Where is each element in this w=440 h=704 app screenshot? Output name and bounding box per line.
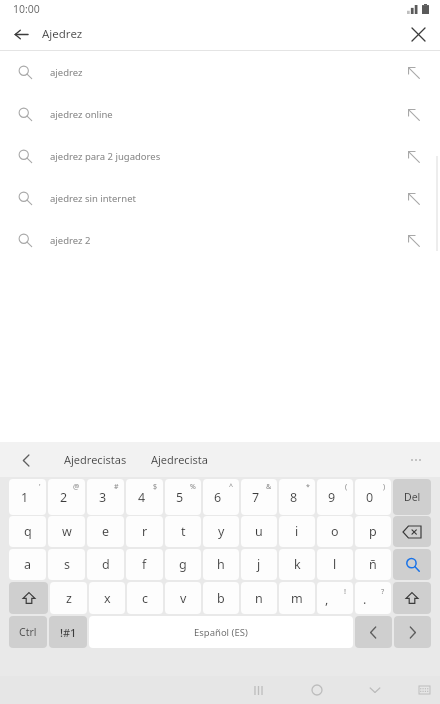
button[interactable]: f: [126, 549, 163, 580]
button[interactable]: l: [317, 549, 353, 580]
button[interactable]: ,: [317, 582, 353, 614]
staticText: 2: [60, 489, 68, 506]
button[interactable]: g: [165, 549, 201, 580]
button[interactable]: e: [87, 516, 124, 547]
button[interactable]: Back: [8, 21, 34, 47]
staticText: p: [369, 523, 377, 540]
button[interactable]: z: [50, 582, 87, 614]
button[interactable]: v: [165, 582, 201, 614]
button[interactable]: h: [203, 549, 239, 580]
staticText: y: [218, 523, 225, 540]
button[interactable]: 3: [87, 479, 124, 515]
button[interactable]: 6: [203, 479, 239, 515]
button[interactable]: a: [9, 549, 46, 580]
button[interactable]: Next: [394, 616, 431, 648]
button[interactable]: Switch keyboard: [413, 679, 435, 701]
button[interactable]: 0: [355, 479, 391, 515]
staticText: 0: [366, 489, 374, 506]
button[interactable]: j: [241, 549, 277, 580]
staticText: Ajedrecista: [151, 452, 208, 467]
staticText: v: [180, 590, 187, 607]
staticText: r: [142, 523, 148, 540]
staticText: s: [64, 556, 70, 573]
button[interactable]: Previous suggestions: [14, 448, 38, 472]
button[interactable]: x: [89, 582, 125, 614]
staticText: ,: [325, 591, 329, 608]
staticText: z: [66, 590, 72, 607]
staticText: 7: [252, 489, 260, 506]
button[interactable]: ajedrez online: [0, 93, 440, 135]
button[interactable]: Clear: [405, 21, 431, 47]
button[interactable]: Shift: [393, 582, 431, 614]
staticText: i: [295, 523, 299, 540]
staticText: Ajedrez: [42, 26, 83, 42]
button[interactable]: b: [203, 582, 239, 614]
button[interactable]: .: [355, 582, 391, 614]
button[interactable]: !#1: [49, 616, 87, 648]
button[interactable]: More options: [406, 450, 426, 470]
button[interactable]: Ctrl: [9, 616, 47, 648]
staticText: Español (ES): [194, 626, 248, 639]
button[interactable]: n: [241, 582, 277, 614]
button[interactable]: Backspace: [393, 516, 431, 547]
button[interactable]: k: [279, 549, 315, 580]
button[interactable]: ñ: [355, 549, 391, 580]
button[interactable]: d: [87, 549, 124, 580]
button[interactable]: m: [279, 582, 315, 614]
button[interactable]: 8: [279, 479, 315, 515]
button[interactable]: ajedrez: [0, 51, 440, 93]
button[interactable]: Search: [393, 549, 431, 580]
staticText: 5: [176, 489, 184, 506]
staticText: Ctrl: [19, 625, 37, 639]
staticText: ?: [381, 586, 385, 596]
staticText: *: [306, 482, 310, 492]
button[interactable]: q: [9, 516, 46, 547]
button[interactable]: u: [241, 516, 277, 547]
staticText: Del: [404, 490, 421, 504]
button[interactable]: 2: [48, 479, 85, 515]
button[interactable]: Hide keyboard: [364, 679, 386, 701]
staticText: t: [181, 523, 186, 540]
button[interactable]: t: [165, 516, 201, 547]
staticText: a: [24, 556, 32, 573]
button[interactable]: p: [355, 516, 391, 547]
button[interactable]: 7: [241, 479, 277, 515]
button[interactable]: 5: [165, 479, 201, 515]
button[interactable]: r: [126, 516, 163, 547]
button[interactable]: ajedrez 2: [0, 219, 440, 261]
staticText: g: [179, 556, 187, 573]
button[interactable]: c: [127, 582, 163, 614]
button[interactable]: ajedrez para 2 jugadores: [0, 135, 440, 177]
button[interactable]: Del: [393, 479, 431, 515]
button[interactable]: y: [203, 516, 239, 547]
button[interactable]: w: [48, 516, 85, 547]
staticText: 10:00: [13, 2, 40, 16]
button[interactable]: s: [48, 549, 85, 580]
button[interactable]: Ajedrecistas: [62, 448, 129, 471]
button[interactable]: ajedrez sin internet: [0, 177, 440, 219]
staticText: w: [62, 523, 72, 540]
button[interactable]: Ajedrecista: [149, 448, 210, 471]
button[interactable]: Recents: [247, 679, 269, 701]
button[interactable]: Home: [306, 679, 328, 701]
staticText: e: [102, 523, 110, 540]
button[interactable]: 1: [9, 479, 46, 515]
staticText: c: [142, 590, 149, 607]
button[interactable]: i: [279, 516, 315, 547]
staticText: ajedrez: [50, 66, 83, 79]
button[interactable]: o: [317, 516, 353, 547]
staticText: &: [266, 482, 272, 492]
button[interactable]: Previous: [355, 616, 392, 648]
button[interactable]: 4: [126, 479, 163, 515]
button[interactable]: Español (ES): [89, 616, 353, 648]
staticText: b: [217, 590, 225, 607]
staticText: j: [257, 556, 261, 573]
staticText: d: [102, 556, 110, 573]
button[interactable]: Shift: [9, 582, 48, 614]
staticText: n: [255, 590, 263, 607]
staticText: q: [24, 523, 32, 540]
staticText: 4: [138, 489, 146, 506]
staticText: 1: [21, 489, 29, 506]
button[interactable]: 9: [317, 479, 353, 515]
staticText: ajedrez online: [50, 108, 113, 121]
